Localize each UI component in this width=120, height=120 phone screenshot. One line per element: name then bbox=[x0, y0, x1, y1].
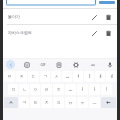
button[interactable]: GIF bbox=[38, 60, 47, 69]
staticText: ㅍ bbox=[56, 100, 61, 106]
button[interactable]: 클립보드 bbox=[54, 60, 63, 69]
button[interactable]: 더보기 bbox=[6, 60, 15, 69]
button[interactable]: ㄱ bbox=[40, 71, 50, 82]
button[interactable]: ㅑ bbox=[84, 71, 94, 82]
button[interactable]: ㅠ bbox=[65, 97, 76, 108]
staticText: ㅑ bbox=[87, 74, 92, 80]
button[interactable]: ㅐ bbox=[95, 71, 105, 82]
staticText: 자바스크립트 bbox=[8, 30, 32, 35]
staticText: ㅈ bbox=[19, 74, 24, 80]
button[interactable]: ㅎ bbox=[53, 84, 64, 95]
staticText: ㅠ bbox=[68, 100, 73, 106]
button[interactable]: 돌아가 bbox=[3, 9, 117, 24]
staticText: ㅕ bbox=[76, 74, 81, 80]
button[interactable]: 자바스크립트 bbox=[3, 25, 117, 40]
button[interactable]: 편집 bbox=[88, 27, 100, 39]
staticText: ㅐ bbox=[98, 74, 103, 80]
button[interactable]: 스티커 bbox=[22, 60, 31, 69]
button[interactable]: Shift bbox=[4, 97, 18, 108]
button[interactable]: ㅡ bbox=[89, 97, 100, 108]
staticText: GIF bbox=[40, 63, 46, 67]
staticText: ㅂ bbox=[7, 74, 12, 80]
button[interactable]: ㅋ bbox=[19, 97, 29, 108]
button[interactable]: ㅅ bbox=[51, 71, 61, 82]
button[interactable]: ㅊ bbox=[41, 97, 52, 108]
button[interactable]: ㅈ bbox=[16, 71, 27, 82]
button[interactable]: ㅓ bbox=[77, 84, 88, 95]
staticText: ㅋ bbox=[22, 100, 27, 106]
staticText: ㄹ bbox=[44, 87, 49, 93]
staticText: ㅛ bbox=[65, 74, 70, 80]
button[interactable]: ㅂ bbox=[4, 71, 15, 82]
staticText: ㅡ bbox=[92, 100, 97, 106]
staticText: ㅜ bbox=[80, 100, 85, 106]
button[interactable]: 음성 입력 bbox=[105, 60, 114, 69]
button[interactable]: 편집 bbox=[88, 11, 100, 23]
button[interactable]: 추가 bbox=[99, 1, 115, 4]
staticText: ㅓ bbox=[80, 87, 85, 93]
staticText: ㅊ bbox=[44, 100, 49, 106]
button[interactable]: 삭제 bbox=[102, 27, 114, 39]
button[interactable]: ㅕ bbox=[73, 71, 83, 82]
staticText: ㄱ bbox=[43, 74, 48, 80]
button[interactable]: ㅌ bbox=[30, 97, 40, 108]
button[interactable]: ㅛ bbox=[62, 71, 72, 82]
button[interactable]: ㅁ bbox=[8, 84, 18, 95]
button[interactable]: 삭제 bbox=[102, 11, 114, 23]
button[interactable]: 키보드 내리기 bbox=[88, 60, 97, 69]
staticText: 돌아가 bbox=[8, 14, 20, 19]
staticText: ㅏ bbox=[92, 87, 97, 93]
button[interactable]: 지우기 bbox=[101, 97, 116, 108]
staticText: ㅇ bbox=[33, 87, 38, 93]
staticText: ㅌ bbox=[33, 100, 38, 106]
button[interactable]: ㅏ bbox=[89, 84, 100, 95]
button[interactable]: 설정 bbox=[71, 60, 80, 69]
button[interactable]: ㅜ bbox=[77, 97, 88, 108]
button[interactable]: ㄹ bbox=[41, 84, 52, 95]
button[interactable]: ㅇ bbox=[30, 84, 40, 95]
button[interactable] bbox=[6, 0, 96, 6]
staticText: ㅗ bbox=[68, 87, 73, 93]
staticText: ㄷ bbox=[31, 74, 36, 80]
staticText: ㅔ bbox=[109, 74, 114, 80]
button[interactable]: ㄴ bbox=[19, 84, 29, 95]
staticText: ㅁ bbox=[11, 87, 16, 93]
button[interactable]: ㅗ bbox=[65, 84, 76, 95]
button[interactable]: ㅍ bbox=[53, 97, 64, 108]
staticText: ㅎ bbox=[56, 87, 61, 93]
button[interactable]: ㅔ bbox=[106, 71, 116, 82]
staticText: ㄴ bbox=[22, 87, 27, 93]
staticText: ㅣ bbox=[104, 87, 109, 93]
button[interactable]: ㅣ bbox=[101, 84, 112, 95]
button[interactable]: ㄷ bbox=[28, 71, 39, 82]
staticText: ㅅ bbox=[54, 74, 59, 80]
